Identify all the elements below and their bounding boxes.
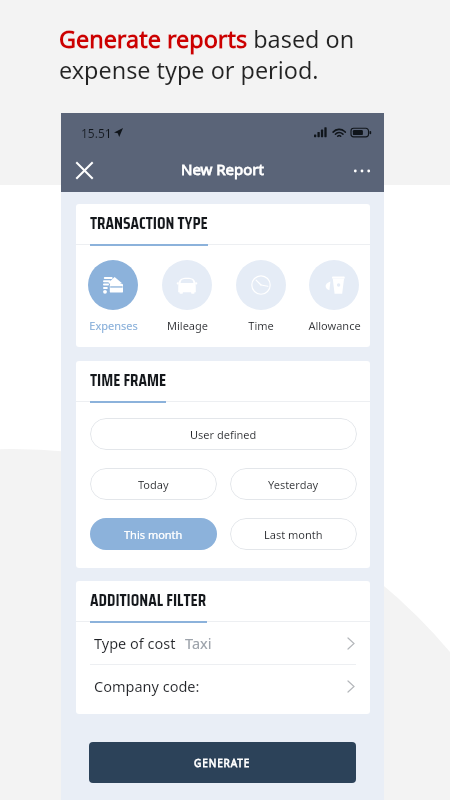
button[interactable]: This month xyxy=(90,518,217,550)
button[interactable]: Company code: xyxy=(76,665,370,707)
staticText: ADDITIONAL FILTER xyxy=(90,587,207,614)
button[interactable]: Time xyxy=(224,260,298,333)
button[interactable]: Last month xyxy=(230,518,357,550)
button[interactable]: Type of cost xyxy=(76,622,370,664)
staticText: 15.51 xyxy=(81,125,112,141)
staticText: Today xyxy=(138,477,169,492)
staticText: Expenses xyxy=(89,318,138,333)
staticText: Mileage xyxy=(167,318,208,333)
staticText: User defined xyxy=(190,427,257,442)
staticText: TRANSACTION TYPE xyxy=(90,210,208,237)
staticText: Company code: xyxy=(94,676,200,696)
staticText: Allowance xyxy=(308,318,361,333)
staticText: Generate reports based on expense type o… xyxy=(59,23,355,86)
button[interactable]: More options xyxy=(344,151,380,190)
staticText: This month xyxy=(124,527,183,542)
button[interactable]: Allowance xyxy=(298,260,370,333)
button[interactable]: User defined xyxy=(90,418,357,450)
staticText: Last month xyxy=(264,527,323,542)
button[interactable]: Yesterday xyxy=(230,468,357,500)
staticText: Yesterday xyxy=(268,477,319,492)
button[interactable]: GENERATE xyxy=(89,742,356,783)
button[interactable]: Today xyxy=(90,468,217,500)
staticText: Taxi xyxy=(185,633,212,653)
staticText: New Report xyxy=(181,159,264,179)
button[interactable]: Mileage xyxy=(150,260,224,333)
staticText: GENERATE xyxy=(194,756,251,770)
button[interactable]: Expenses xyxy=(76,260,150,333)
staticText: TIME FRAME xyxy=(90,367,167,394)
staticText: Type of cost xyxy=(94,633,176,653)
staticText: Time xyxy=(248,318,274,333)
button[interactable]: Close xyxy=(66,151,102,190)
